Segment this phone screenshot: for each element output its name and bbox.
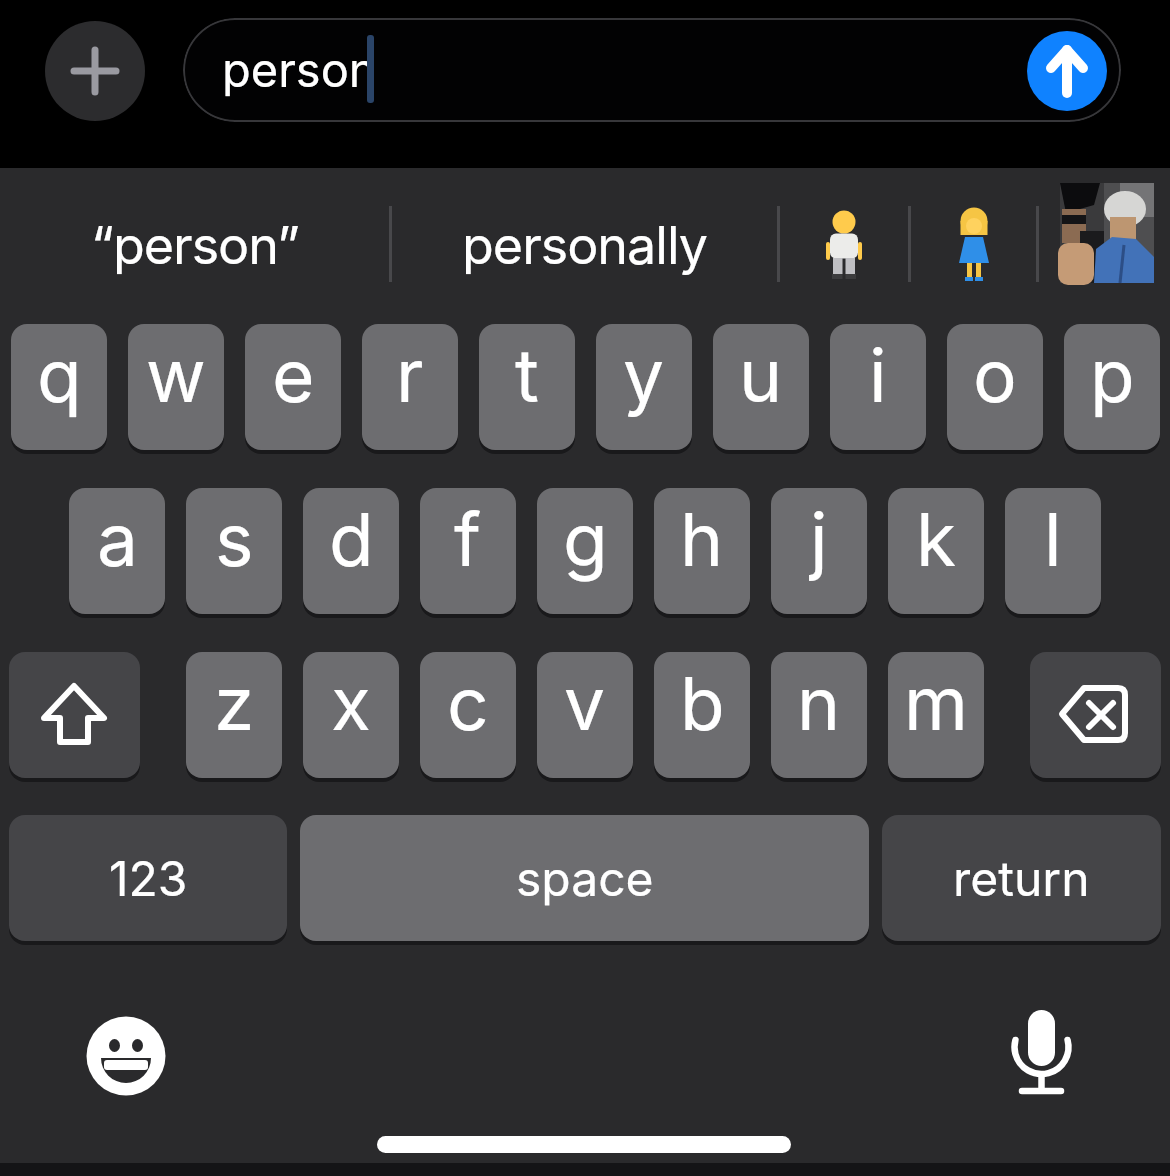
button[interactable]: “person” xyxy=(10,175,380,315)
button[interactable]: person xyxy=(183,18,1121,122)
button[interactable]: u xyxy=(713,324,809,450)
button[interactable]: h xyxy=(654,488,750,614)
button[interactable]: m xyxy=(888,652,984,778)
button[interactable]: j xyxy=(771,488,867,614)
staticText: b xyxy=(680,659,725,747)
staticText: n xyxy=(797,659,841,747)
staticText: s xyxy=(215,495,254,583)
staticText: g xyxy=(563,495,608,583)
staticText: space xyxy=(516,849,654,907)
staticText: z xyxy=(214,659,255,747)
button[interactable] xyxy=(9,652,140,778)
staticText: l xyxy=(1044,495,1062,583)
button[interactable] xyxy=(1027,31,1107,111)
staticText: h xyxy=(680,495,724,583)
button[interactable]: a xyxy=(69,488,165,614)
button[interactable]: w xyxy=(128,324,224,450)
button[interactable]: g xyxy=(537,488,633,614)
staticText: w xyxy=(146,331,206,419)
button[interactable]: q xyxy=(11,324,107,450)
staticText: 123 xyxy=(109,849,188,907)
staticText: y xyxy=(623,331,665,419)
button[interactable]: 123 xyxy=(9,815,287,941)
button[interactable]: i xyxy=(830,324,926,450)
button[interactable] xyxy=(45,21,145,121)
button[interactable]: c xyxy=(420,652,516,778)
button[interactable]: b xyxy=(654,652,750,778)
staticText: f xyxy=(454,495,482,583)
staticText: a xyxy=(97,495,138,583)
staticText: r xyxy=(396,331,424,419)
staticText: q xyxy=(37,331,82,419)
button[interactable]: z xyxy=(186,652,282,778)
button[interactable]: personally xyxy=(400,175,768,315)
staticText: p xyxy=(1090,331,1135,419)
staticText: person xyxy=(222,41,377,98)
staticText: v xyxy=(564,659,606,747)
button[interactable]: k xyxy=(888,488,984,614)
button[interactable]: v xyxy=(537,652,633,778)
button[interactable]: f xyxy=(420,488,516,614)
button[interactable] xyxy=(992,1006,1092,1106)
staticText: k xyxy=(916,495,957,583)
staticText: personally xyxy=(462,214,707,277)
button[interactable]: space xyxy=(300,815,869,941)
staticText: c xyxy=(447,659,489,747)
staticText: m xyxy=(904,659,968,747)
button[interactable] xyxy=(786,180,902,310)
button[interactable]: x xyxy=(303,652,399,778)
button[interactable]: o xyxy=(947,324,1043,450)
staticText: x xyxy=(331,659,371,747)
button[interactable]: return xyxy=(882,815,1161,941)
button[interactable]: r xyxy=(362,324,458,450)
button[interactable]: y xyxy=(596,324,692,450)
button[interactable]: n xyxy=(771,652,867,778)
staticText: return xyxy=(953,849,1090,907)
staticText: i xyxy=(869,331,887,419)
staticText: j xyxy=(810,495,828,583)
button[interactable] xyxy=(1030,652,1161,778)
button[interactable]: s xyxy=(186,488,282,614)
staticText: e xyxy=(272,331,315,419)
button[interactable]: p xyxy=(1064,324,1160,450)
staticText: d xyxy=(329,495,374,583)
button[interactable] xyxy=(915,180,1031,310)
button[interactable] xyxy=(1060,183,1154,283)
button[interactable]: t xyxy=(479,324,575,450)
staticText: “person” xyxy=(91,214,299,277)
button[interactable]: d xyxy=(303,488,399,614)
button[interactable]: l xyxy=(1005,488,1101,614)
staticText: u xyxy=(739,331,783,419)
button[interactable]: e xyxy=(245,324,341,450)
staticText: t xyxy=(515,331,539,419)
staticText: o xyxy=(973,331,1017,419)
button[interactable] xyxy=(77,1006,177,1106)
